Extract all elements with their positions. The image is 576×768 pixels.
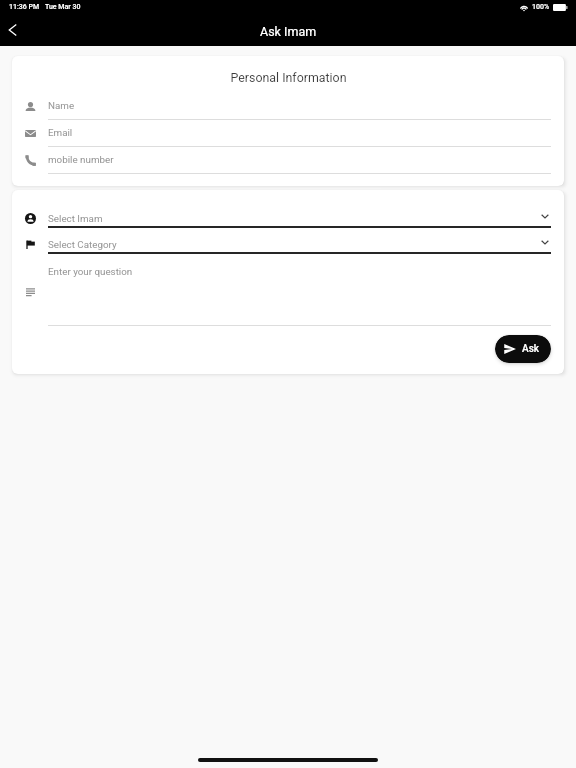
- staticText: Select Imam: [48, 213, 103, 224]
- staticText: Tue Mar 30: [45, 3, 81, 11]
- button[interactable]: Select Imam: [12, 202, 564, 228]
- button[interactable]: Email: [12, 120, 564, 147]
- staticText: Enter your question: [48, 266, 133, 277]
- button[interactable]: mobile number: [12, 147, 564, 174]
- staticText: Personal Information: [230, 70, 347, 85]
- button[interactable]: Ask: [495, 335, 551, 363]
- staticText: Name: [48, 100, 75, 111]
- button[interactable]: Name: [12, 93, 564, 120]
- staticText: Ask: [522, 343, 539, 355]
- staticText: 11:36 PM: [9, 3, 40, 11]
- staticText: mobile number: [48, 154, 114, 165]
- button[interactable]: Back: [0, 19, 26, 45]
- button[interactable]: Select Category: [12, 228, 564, 254]
- staticText: Select Category: [48, 239, 117, 250]
- staticText: 100%: [532, 3, 550, 11]
- staticText: Email: [48, 127, 73, 138]
- staticText: Ask Imam: [260, 24, 317, 39]
